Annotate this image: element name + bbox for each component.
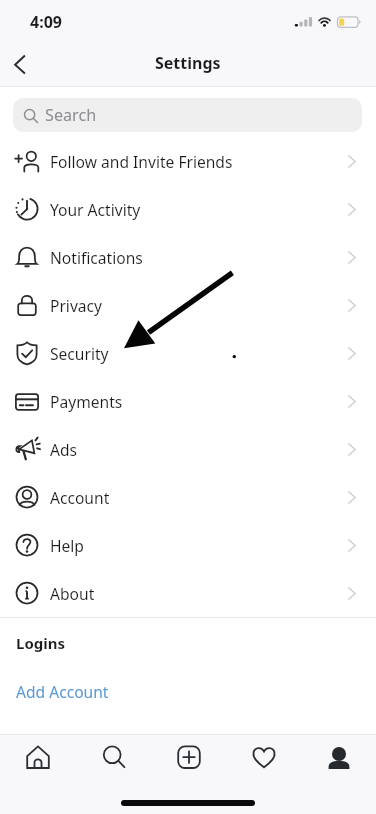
staticText: About (50, 583, 95, 604)
button[interactable]: Your Activity (0, 185, 376, 233)
staticText: Your Activity (50, 199, 141, 220)
staticText: Account (50, 487, 110, 508)
button[interactable]: Log Out (0, 715, 376, 763)
staticText: 4:09 (30, 11, 62, 33)
staticText: Follow and Invite Friends (50, 151, 233, 172)
button[interactable]: Home (0, 735, 76, 778)
staticText: Add Account (16, 681, 109, 702)
button[interactable]: Help (0, 521, 376, 569)
button[interactable]: Notifications (0, 233, 376, 281)
button[interactable]: Search (13, 98, 362, 132)
button[interactable]: Profile (301, 735, 376, 778)
button[interactable]: Activity (226, 735, 301, 778)
button[interactable]: Search (76, 735, 151, 778)
button[interactable]: Account (0, 473, 376, 521)
button[interactable]: Back (0, 42, 40, 86)
button[interactable]: About (0, 569, 376, 617)
button[interactable]: Add Account (0, 667, 376, 715)
button[interactable]: Privacy (0, 281, 376, 329)
staticText: Payments (50, 391, 123, 412)
staticText: Security (50, 343, 109, 364)
staticText: Logins (16, 633, 66, 653)
staticText: Ads (50, 439, 78, 460)
staticText: Notifications (50, 247, 143, 268)
staticText: Search (45, 104, 97, 126)
staticText: Privacy (50, 295, 103, 316)
button[interactable]: Ads (0, 425, 376, 473)
staticText: Help (50, 535, 84, 556)
button[interactable]: Follow and Invite Friends (0, 137, 376, 185)
staticText: Log Out (16, 729, 75, 750)
button[interactable]: Payments (0, 377, 376, 425)
button[interactable]: Create (151, 735, 226, 778)
staticText: Settings (155, 52, 221, 74)
button[interactable]: Security (0, 329, 376, 377)
